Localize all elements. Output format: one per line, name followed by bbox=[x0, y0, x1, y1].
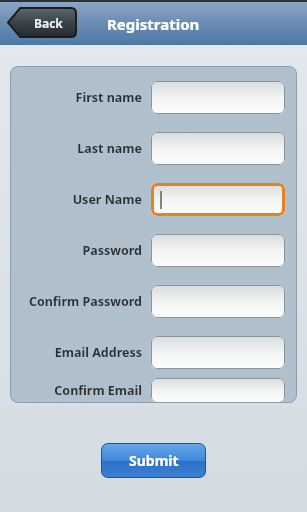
button[interactable]: Email Address bbox=[14, 327, 293, 378]
button[interactable]: Confirm Email bbox=[14, 378, 293, 403]
button[interactable] bbox=[151, 285, 285, 318]
button[interactable]: Submit bbox=[101, 443, 206, 478]
button[interactable]: User Name bbox=[14, 174, 293, 225]
staticText: Back bbox=[34, 15, 63, 31]
staticText: Submit bbox=[129, 451, 179, 470]
staticText: User Name bbox=[14, 191, 142, 208]
button[interactable] bbox=[151, 132, 285, 165]
staticText: Confirm Email bbox=[14, 382, 142, 399]
staticText: Registration bbox=[107, 14, 200, 34]
staticText: Last name bbox=[14, 140, 142, 157]
button[interactable]: First name bbox=[14, 72, 293, 123]
button[interactable] bbox=[151, 234, 285, 267]
button[interactable] bbox=[151, 183, 285, 216]
button[interactable]: Confirm Password bbox=[14, 276, 293, 327]
button[interactable]: Back bbox=[8, 8, 76, 37]
staticText: Password bbox=[14, 242, 142, 259]
button[interactable]: Last name bbox=[14, 123, 293, 174]
button[interactable] bbox=[151, 81, 285, 114]
staticText: First name bbox=[14, 89, 142, 106]
button[interactable] bbox=[151, 336, 285, 369]
button[interactable] bbox=[151, 378, 285, 403]
staticText: Email Address bbox=[14, 344, 142, 361]
button[interactable]: Password bbox=[14, 225, 293, 276]
staticText: Confirm Password bbox=[14, 293, 142, 310]
